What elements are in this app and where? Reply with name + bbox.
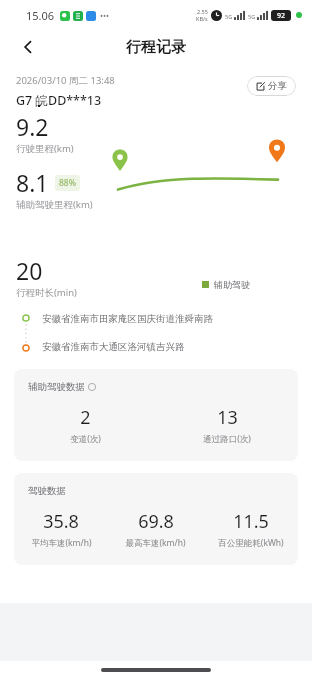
staticText: 辅助驾驶数据: [28, 381, 85, 393]
staticText: 20: [16, 255, 43, 286]
button[interactable]: Back: [10, 30, 46, 64]
staticText: 92: [277, 11, 286, 21]
staticText: 驾驶数据: [28, 485, 66, 497]
staticText: 变道(次): [70, 433, 101, 445]
staticText: •••: [100, 10, 110, 21]
staticText: 安徽省淮南市大通区洛河镇吉兴路: [42, 341, 185, 353]
staticText: 安徽省淮南市田家庵区国庆街道淮舜南路: [42, 313, 213, 325]
button[interactable]: 驾驶数据: [14, 473, 298, 565]
staticText: 通过路口(次): [203, 433, 251, 445]
staticText: 分享: [268, 80, 287, 92]
button[interactable]: 分享: [247, 76, 296, 96]
staticText: 13: [217, 405, 238, 430]
staticText: 行驶里程(km): [16, 142, 74, 155]
staticText: 最高车速(km/h): [125, 537, 186, 549]
staticText: G7 皖DD***13: [16, 92, 102, 109]
staticText: 11.5: [233, 509, 269, 534]
staticText: 5G: [248, 13, 256, 20]
staticText: 2.55: [197, 8, 208, 15]
staticText: 8.1: [16, 167, 49, 198]
staticText: 行程记录: [126, 38, 186, 57]
staticText: 2: [80, 405, 91, 430]
staticText: 平均车速(km/h): [31, 537, 92, 549]
staticText: 9.2: [16, 111, 49, 142]
staticText: 15.06: [26, 8, 55, 23]
staticText: 辅助驾驶里程(km): [16, 198, 93, 211]
staticText: 69.8: [138, 509, 174, 534]
staticText: 88%: [59, 177, 76, 189]
staticText: KB/s: [196, 15, 208, 22]
staticText: 2026/03/10 周二 13:48: [16, 74, 115, 87]
staticText: 辅助驾驶: [214, 279, 250, 290]
staticText: 35.8: [43, 509, 79, 534]
staticText: 5G: [225, 13, 233, 20]
staticText: 行程时长(min): [16, 286, 77, 299]
staticText: 百公里能耗(kWh): [218, 537, 284, 549]
button[interactable]: 辅助驾驶数据: [14, 369, 298, 461]
